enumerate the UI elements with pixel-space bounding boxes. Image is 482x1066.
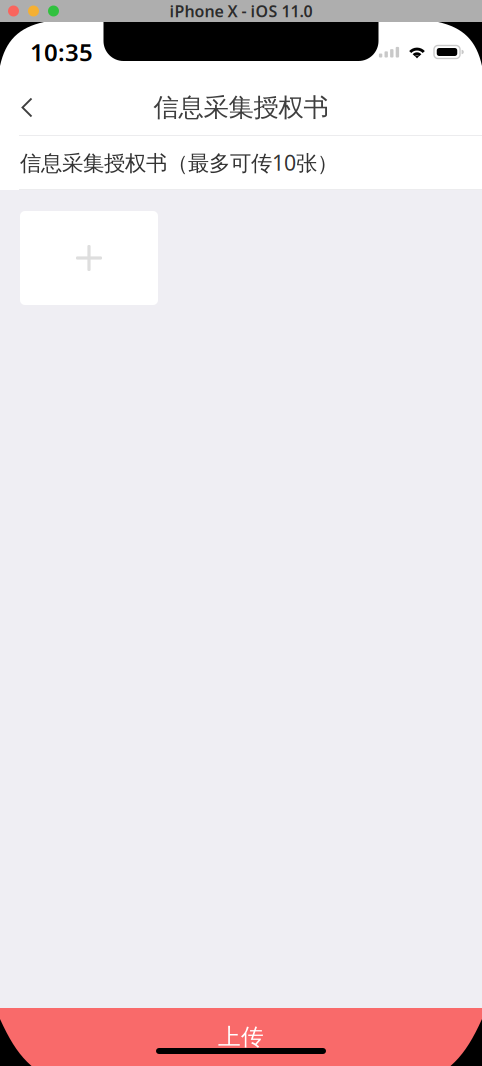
button[interactable]: 上传 <box>0 1020 482 1054</box>
button[interactable]: Close <box>8 5 19 16</box>
staticText: 上传 <box>218 1023 264 1051</box>
button[interactable]: Zoom <box>48 5 59 16</box>
button[interactable]: Back <box>5 80 49 135</box>
staticText: 信息采集授权书 <box>153 92 328 123</box>
button[interactable]: Minimise <box>28 5 39 16</box>
staticText: 信息采集授权书（最多可传10张） <box>20 148 338 177</box>
button[interactable]: Add photo <box>20 211 158 305</box>
staticText: 10:35 <box>30 36 93 68</box>
staticText: iPhone X - iOS 11.0 <box>169 0 312 22</box>
